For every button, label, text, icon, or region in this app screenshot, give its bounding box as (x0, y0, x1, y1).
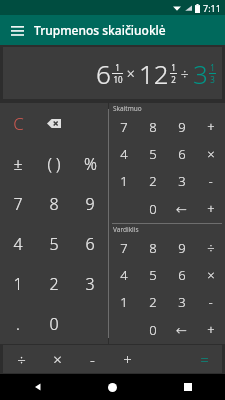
button[interactable]: 8 (138, 113, 167, 140)
button[interactable]: Back (0, 374, 75, 400)
button[interactable]: 6 (72, 224, 108, 264)
button[interactable]: 2 (138, 288, 167, 316)
button[interactable]: 4 (109, 261, 138, 288)
staticText: ( ) (47, 153, 61, 175)
button[interactable]: × (196, 261, 225, 288)
staticText: - (90, 349, 95, 369)
button[interactable]: 3 (72, 264, 108, 304)
staticText: + (207, 118, 215, 136)
staticText: - (208, 293, 213, 311)
staticText: 4 (120, 145, 128, 163)
button[interactable]: + (196, 113, 225, 140)
staticText: 6 (96, 56, 111, 91)
button[interactable]: + (110, 345, 145, 373)
staticText: 4 (13, 233, 23, 255)
button[interactable]: ÷ (196, 234, 225, 261)
staticText: 0 (49, 313, 59, 335)
button[interactable]: 1 (109, 288, 138, 316)
button[interactable]: Home (75, 374, 150, 400)
staticText: 7 (13, 193, 23, 215)
button[interactable]: + (196, 195, 225, 223)
button[interactable]: 5 (36, 224, 72, 264)
button[interactable]: - (196, 288, 225, 316)
button[interactable]: 9 (167, 113, 196, 140)
button[interactable]: ± (0, 144, 36, 184)
button[interactable]: 9 (167, 234, 196, 261)
button[interactable]: 8 (36, 184, 72, 224)
button[interactable]: + (196, 316, 225, 344)
button[interactable]: Backspace (36, 103, 72, 144)
button[interactable]: 0 (36, 304, 72, 344)
button[interactable]: 0 (138, 316, 167, 344)
button[interactable]: - (75, 345, 110, 373)
staticText: ÷ (177, 64, 193, 83)
button[interactable]: 6 (167, 261, 196, 288)
button[interactable]: 4 (109, 140, 138, 167)
staticText: - (208, 172, 213, 190)
button[interactable]: 3 (167, 167, 196, 195)
button[interactable]: 7 (109, 113, 138, 140)
staticText: ÷ (207, 239, 215, 257)
button[interactable]: ÷ (3, 345, 39, 373)
staticText: 5 (49, 233, 59, 255)
staticText: 10 (113, 74, 123, 85)
button[interactable]: ( ) (36, 144, 72, 184)
staticText: 6 (178, 266, 186, 284)
staticText: 9 (178, 239, 186, 257)
button[interactable]: Menu (0, 15, 34, 45)
button[interactable]: × (196, 140, 225, 167)
staticText: 3 (210, 74, 215, 85)
staticText: 3 (193, 56, 208, 91)
button[interactable]: . (0, 304, 36, 344)
button[interactable]: Backspace (167, 195, 196, 223)
staticText: 7:11 (203, 2, 221, 14)
button[interactable]: 3 (167, 288, 196, 316)
button[interactable]: 7 (109, 234, 138, 261)
staticText: 6 (178, 145, 186, 163)
staticText: × (207, 145, 215, 163)
button[interactable]: 2 (138, 167, 167, 195)
staticText: ← (176, 323, 187, 338)
staticText: 8 (149, 239, 157, 257)
button[interactable]: % (72, 144, 108, 184)
button[interactable]: 6 (3, 47, 222, 99)
staticText: + (207, 200, 215, 218)
staticText: 7 (120, 239, 128, 257)
staticText: 2 (49, 273, 59, 295)
button[interactable]: 0 (138, 195, 167, 223)
button[interactable]: 1 (0, 264, 36, 304)
staticText: 1 (13, 273, 23, 295)
staticText: 5 (149, 145, 157, 163)
staticText: 9 (85, 193, 95, 215)
staticText: ← (176, 202, 187, 217)
button[interactable]: 4 (0, 224, 36, 264)
staticText: 3 (178, 293, 186, 311)
button[interactable]: Backspace (167, 316, 196, 344)
button[interactable]: 9 (72, 184, 108, 224)
button[interactable]: Recent apps (150, 374, 225, 400)
staticText: 12 (139, 56, 169, 91)
staticText: 2 (171, 74, 176, 85)
button[interactable]: 8 (138, 234, 167, 261)
button[interactable]: × (39, 345, 75, 373)
button[interactable]: 2 (36, 264, 72, 304)
staticText: 1 (115, 62, 120, 73)
staticText: × (123, 64, 139, 83)
button[interactable]: 5 (138, 261, 167, 288)
staticText: 1 (210, 62, 215, 73)
button[interactable]: - (196, 167, 225, 195)
button[interactable]: C (0, 103, 36, 144)
button[interactable]: 1 (109, 167, 138, 195)
staticText: 0 (149, 321, 157, 339)
button[interactable]: 7 (0, 184, 36, 224)
staticText: + (207, 321, 215, 339)
staticText: 3 (85, 273, 95, 295)
button[interactable]: 5 (138, 140, 167, 167)
button[interactable]: 6 (167, 140, 196, 167)
button[interactable]: = (187, 345, 222, 373)
staticText: Vardiklis (113, 225, 139, 234)
staticText: 2 (149, 172, 157, 190)
